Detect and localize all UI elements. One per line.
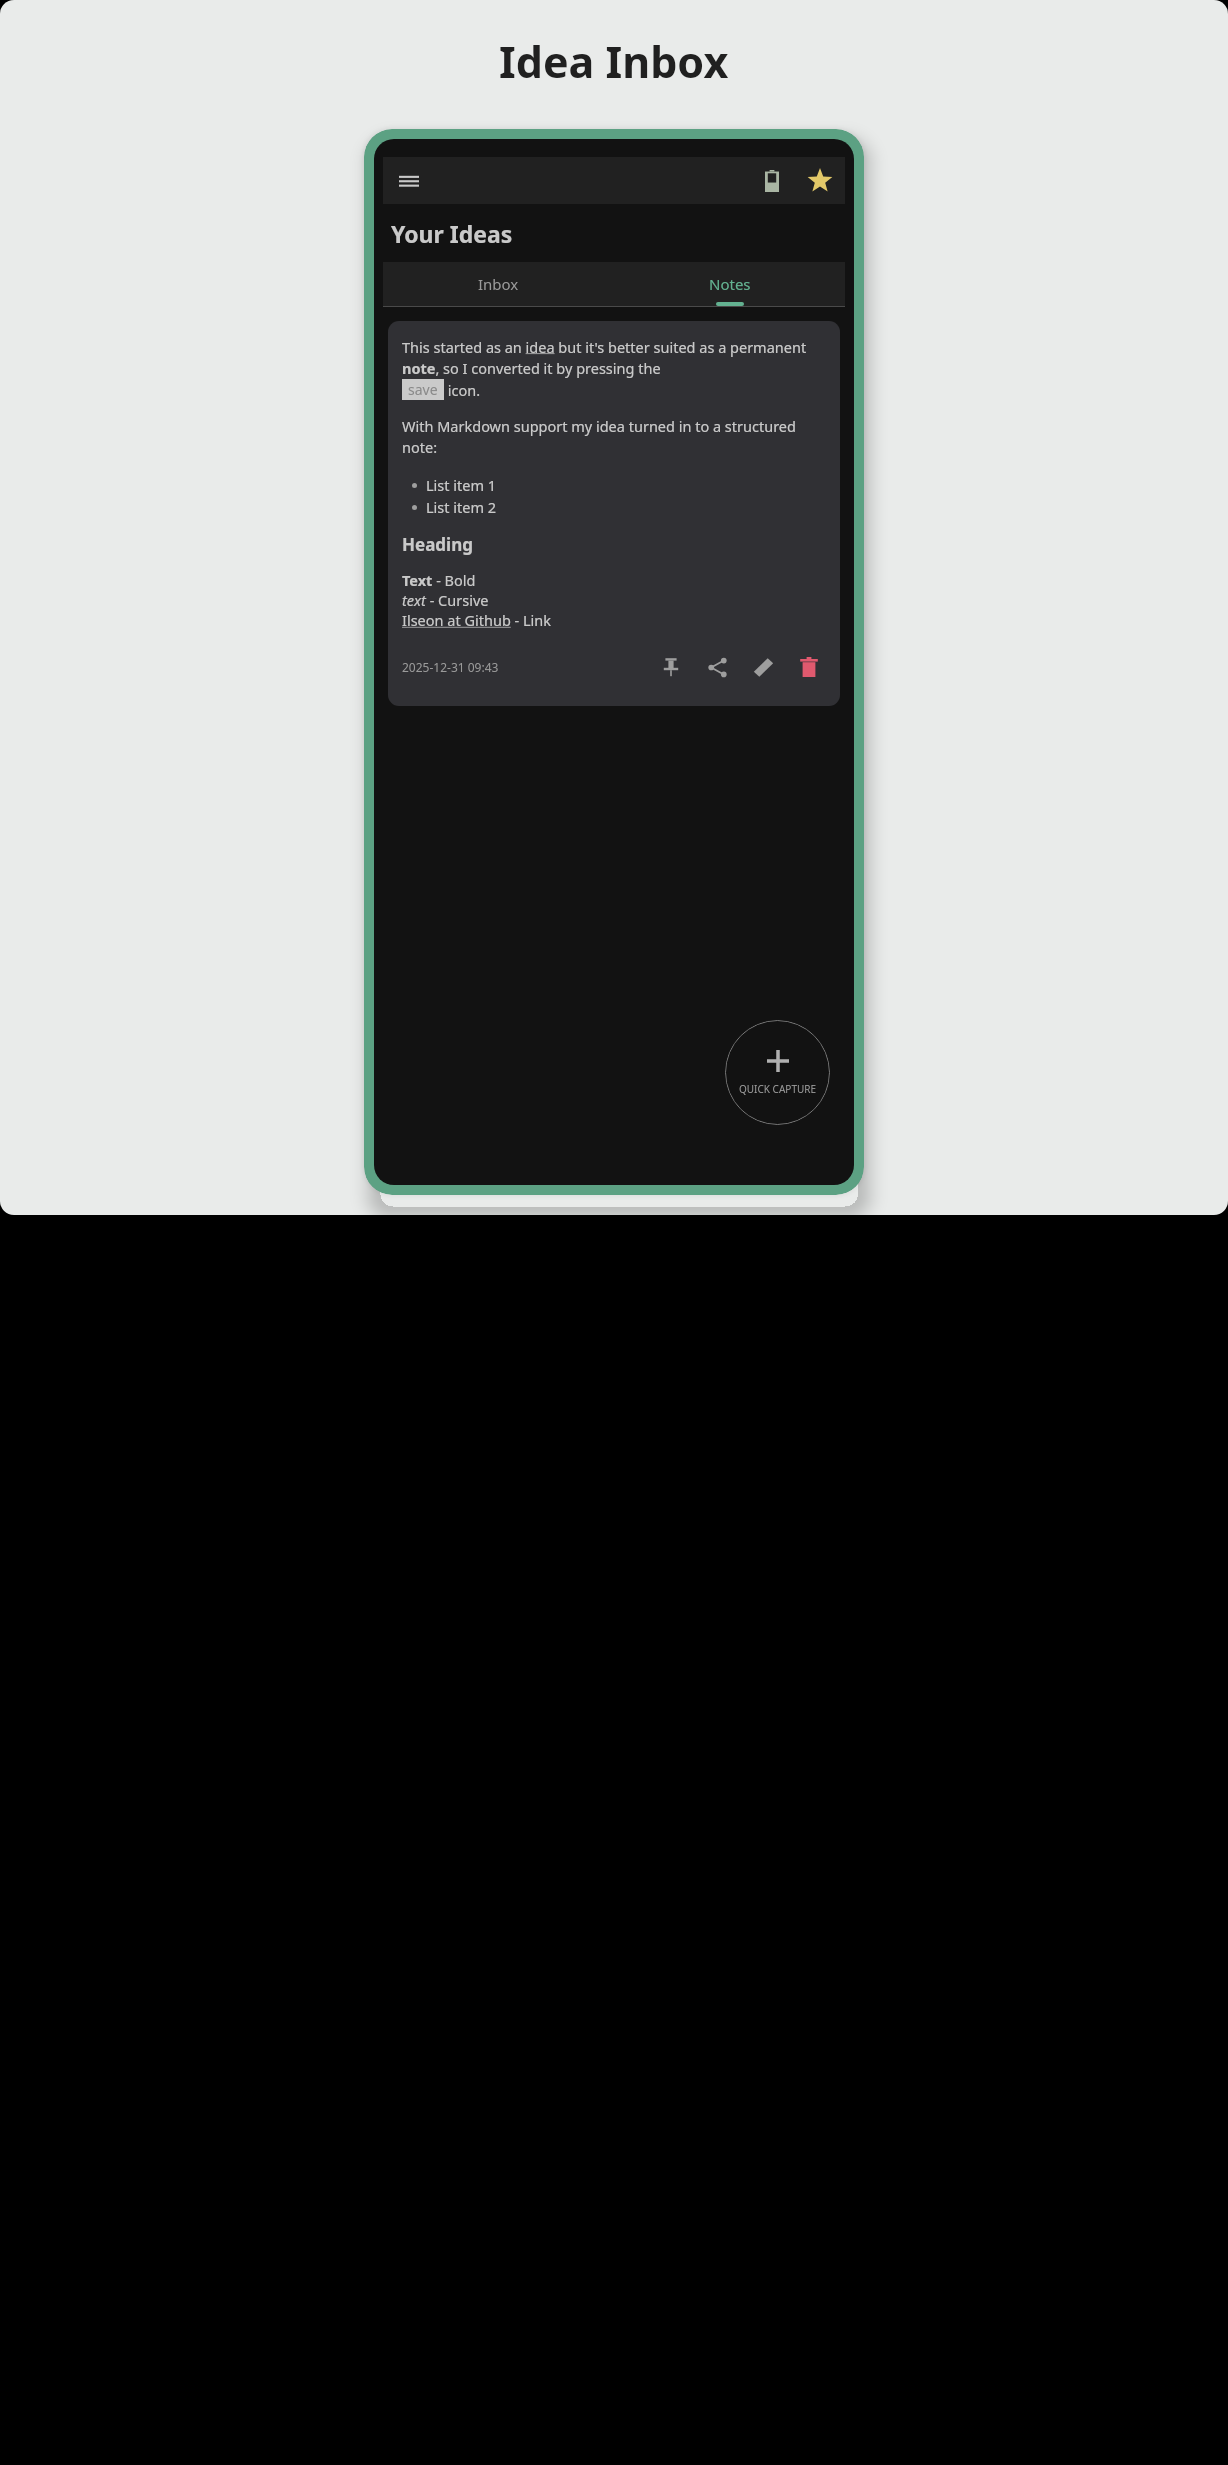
staticText: Text - Bold [402, 570, 476, 590]
staticText: This started as an idea but it's better … [402, 337, 826, 379]
staticText: Inbox [478, 274, 519, 294]
staticText: Notes [709, 274, 751, 294]
staticText: Idea Inbox [499, 32, 729, 91]
button[interactable]: Inbox [383, 262, 614, 306]
staticText: Your Ideas [391, 218, 513, 249]
staticText: QUICK CAPTURE [739, 1082, 817, 1096]
button[interactable]: Edit [746, 650, 780, 684]
staticText: Heading [402, 533, 473, 556]
button[interactable]: This started as an idea but it's better … [388, 321, 840, 706]
button[interactable]: Delete [792, 650, 826, 684]
button[interactable]: Share [700, 650, 734, 684]
staticText: icon. [444, 380, 481, 400]
button[interactable]: Quick capture [725, 1020, 830, 1125]
staticText: text - Cursive [402, 590, 489, 610]
staticText: Ilseon at Github - Link [402, 610, 552, 630]
staticText: 2025-12-31 09:43 [402, 659, 499, 675]
button[interactable]: Favorite [801, 162, 839, 200]
staticText: List item 1 [426, 475, 497, 495]
staticText: save [408, 380, 438, 399]
button[interactable]: Battery [753, 162, 791, 200]
button[interactable]: Menu [391, 163, 427, 199]
button[interactable]: Pin [654, 650, 688, 684]
button[interactable]: Notes [614, 262, 845, 306]
staticText: List item 2 [426, 497, 497, 517]
staticText: With Markdown support my idea turned in … [402, 416, 826, 458]
